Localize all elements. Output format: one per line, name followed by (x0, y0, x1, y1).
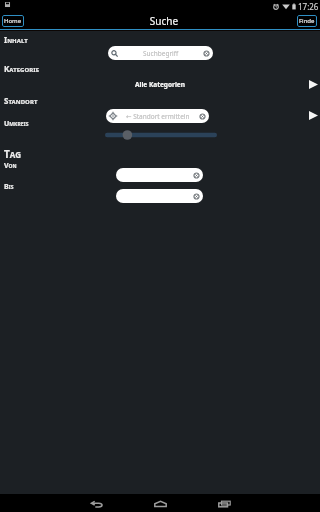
other: Clear (193, 172, 200, 179)
staticText: ← Standort ermitteln (126, 112, 190, 121)
staticText: 17:26 (298, 1, 319, 12)
staticText: TAG (4, 147, 22, 161)
button[interactable]: Clear (116, 168, 203, 182)
staticText: KATEGORIE (4, 63, 40, 74)
other: Clear (193, 193, 200, 200)
button[interactable]: Alle Kategorien (0, 77, 320, 91)
button[interactable]: Open (309, 80, 318, 89)
button[interactable]: Home (2, 15, 24, 27)
button[interactable]: Clear (116, 189, 203, 203)
staticText: VON (4, 161, 17, 171)
button[interactable]: Home (145, 494, 175, 512)
other: Clear (199, 113, 206, 120)
staticText: UMKREIS (4, 119, 29, 129)
button[interactable]: ← Standort ermitteln (106, 109, 209, 123)
staticText: Home (4, 17, 22, 25)
other: Clear (203, 50, 210, 57)
staticText: Alle Kategorien (135, 80, 185, 89)
button[interactable]: Open (309, 111, 318, 120)
staticText: Suchbegriff (143, 49, 179, 58)
button[interactable] (101, 128, 221, 142)
button[interactable]: Recents (209, 494, 239, 512)
staticText: Suche (4, 14, 320, 28)
staticText: Finde (299, 17, 315, 25)
button[interactable]: Back (81, 494, 111, 512)
staticText: STANDORT (4, 95, 38, 106)
staticText: BIS (4, 182, 14, 192)
staticText: INHALT (4, 34, 28, 45)
button[interactable]: Finde (297, 15, 317, 27)
button[interactable]: Suchbegriff (108, 46, 213, 60)
